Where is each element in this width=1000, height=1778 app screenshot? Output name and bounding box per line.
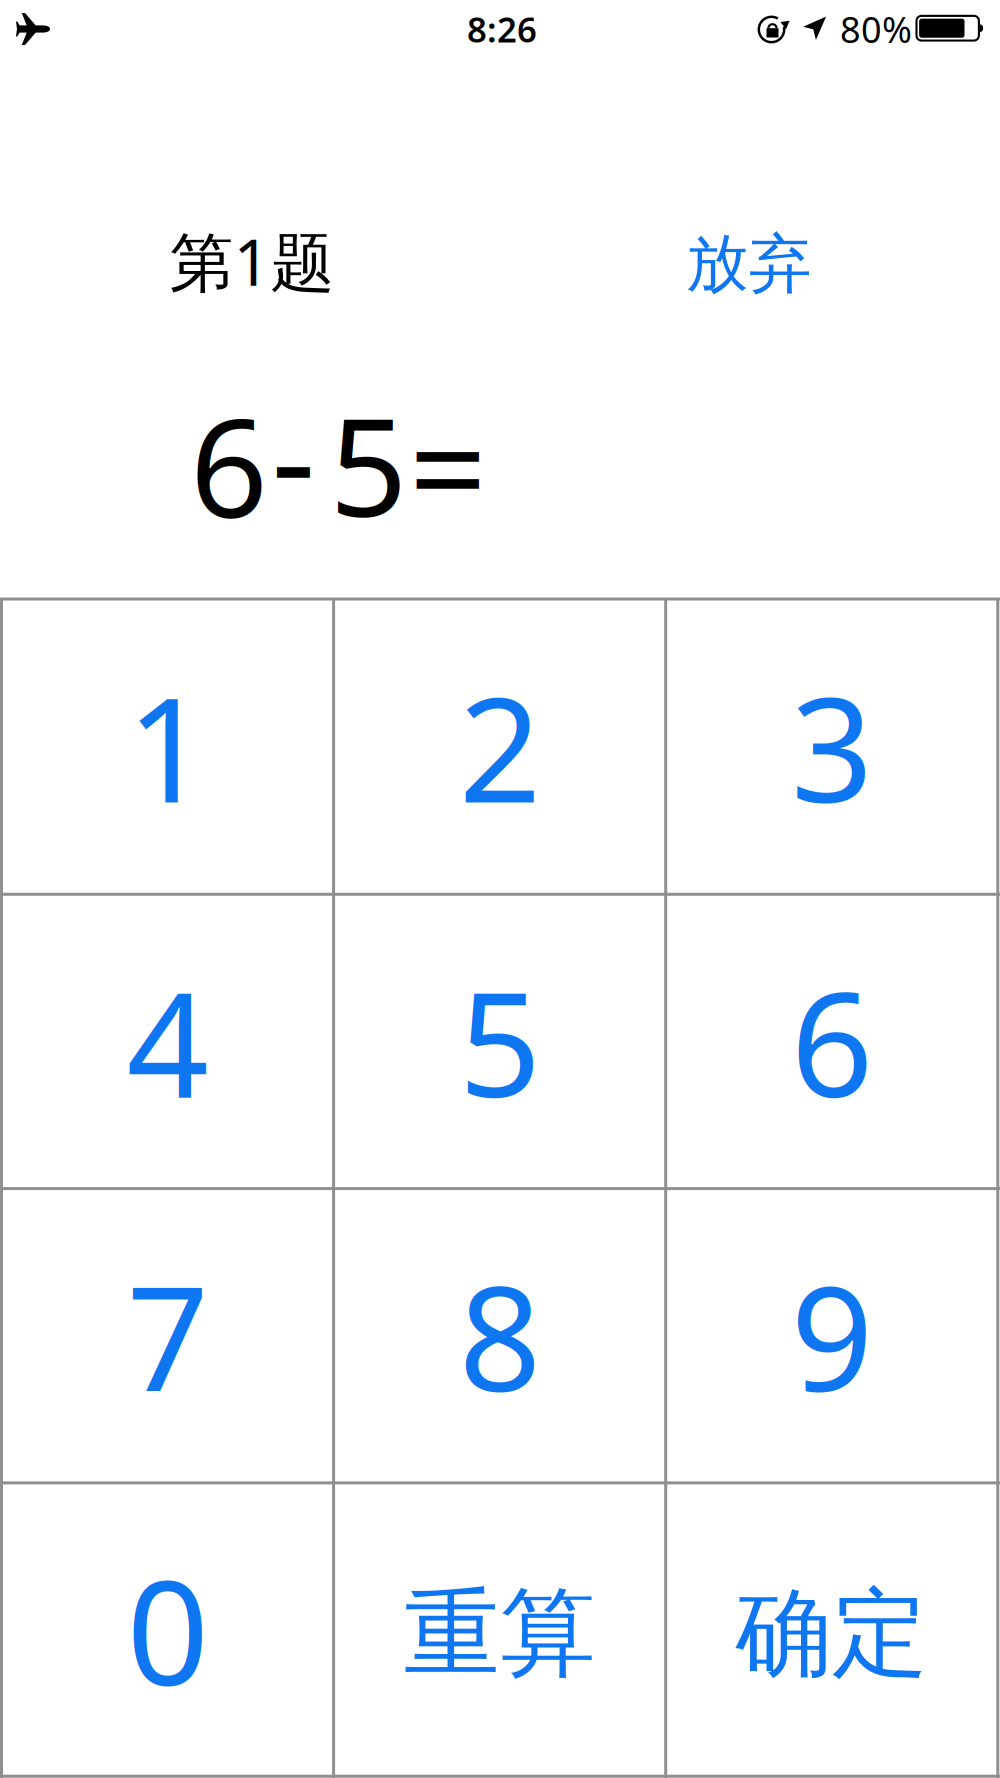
button[interactable]: 3 [667, 600, 996, 893]
button[interactable]: 4 [3, 896, 332, 1187]
button[interactable]: 重算 [335, 1489, 664, 1778]
staticText: 重算 [404, 1575, 596, 1693]
button[interactable]: 5 [335, 896, 664, 1187]
staticText: 2 [459, 651, 541, 842]
staticText: 4 [127, 946, 209, 1137]
button[interactable]: 9 [667, 1190, 996, 1481]
button[interactable]: 7 [3, 1190, 332, 1481]
button[interactable]: 0 [3, 1484, 332, 1775]
button[interactable]: 2 [335, 600, 664, 893]
button[interactable]: 8 [335, 1190, 664, 1481]
staticText: 5 [329, 374, 407, 554]
staticText: 6 [791, 946, 873, 1137]
staticText: 确定 [736, 1575, 928, 1693]
staticText: 0 [127, 1534, 209, 1725]
staticText: 3 [791, 651, 873, 842]
staticText: 6 [190, 375, 268, 555]
staticText: 1 [127, 651, 209, 842]
staticText: 第1题 [169, 218, 334, 303]
staticText: 8:26 [467, 6, 537, 52]
staticText: 放弃 [686, 225, 812, 302]
staticText: = [409, 375, 487, 555]
staticText: 7 [127, 1240, 209, 1431]
staticText: 8 [459, 1240, 541, 1431]
staticText: 5 [459, 946, 541, 1137]
staticText: - [271, 366, 315, 546]
button[interactable]: 放弃 [686, 225, 812, 302]
staticText: 80% [840, 5, 912, 53]
button[interactable]: 6 [667, 896, 996, 1187]
button[interactable]: 1 [3, 600, 332, 893]
button[interactable]: 确定 [667, 1489, 996, 1778]
staticText: 9 [791, 1240, 873, 1431]
